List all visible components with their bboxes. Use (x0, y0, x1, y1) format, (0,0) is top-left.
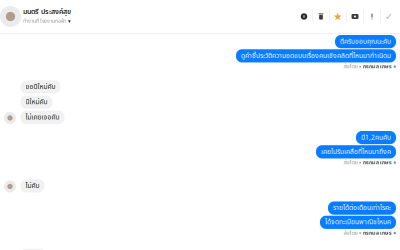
staticText: ได้จดทะเบียนพาณิชไหมค (325, 219, 391, 225)
staticText: มนตรี ประสงค์สุข (23, 9, 71, 15)
staticText: ไม่เคยเจอคับ (25, 114, 59, 120)
button[interactable]: Delete (312, 6, 329, 26)
button[interactable]: ดีครับขอบคุณนะคับ (335, 35, 396, 48)
staticText: กรกมล เกษร (363, 230, 392, 236)
button[interactable]: รายได้ต่อเดือนเท่าไรคะ (328, 201, 396, 215)
button[interactable]: ขอปีใหม่คับ (20, 80, 60, 93)
staticText: กรกมล เกษร (363, 64, 392, 69)
button[interactable]: มนตรี ประสงค์สุข (21, 9, 71, 24)
staticText: ขอปีใหม่คับ (25, 84, 55, 90)
staticText: กรกมล เกษร (363, 160, 392, 165)
staticText: มี1,2คนคับ (361, 134, 391, 141)
button[interactable]: ไม่คับ (20, 179, 44, 192)
button[interactable]: Mail (346, 6, 363, 26)
staticText: ไม่คับ (25, 183, 39, 189)
button[interactable]: Mark done (380, 6, 397, 26)
button[interactable]: ดูคำชี้ประวัติความอดแบบเรื่องคนเชิงคลิดท… (236, 49, 396, 62)
button[interactable]: Star (329, 6, 346, 26)
staticText: ★ (333, 10, 343, 22)
button[interactable]: เคยไปรับเคลือที่ไหนมาถึงค (316, 145, 396, 158)
staticText: ดีครับขอบคุณนะคับ (340, 38, 391, 45)
button[interactable]: ยังคับ (20, 249, 46, 250)
staticText: ดูคำชี้ประวัติความอดแบบเรื่องคนเชิงคลิดท… (241, 53, 391, 59)
button[interactable]: มี1,2คนคับ (356, 131, 396, 144)
staticText: ส่งโดย (343, 64, 357, 69)
staticText: ▾ (68, 18, 71, 24)
button[interactable]: Info (295, 6, 312, 26)
staticText: รายได้ต่อเดือนเท่าไรคะ (333, 205, 391, 211)
staticText: ปีใหม่คับ (25, 99, 47, 105)
button[interactable]: Report spam (363, 6, 380, 26)
button[interactable]: ไม่เคยเจอคับ (20, 111, 64, 124)
staticText: ส่งโดย (343, 160, 357, 165)
button[interactable]: ปีใหม่คับ (20, 95, 52, 109)
button[interactable]: Contact photo (0, 6, 21, 27)
button[interactable]: ได้จดทะเบียนพาณิชไหมค (320, 216, 396, 229)
staticText: ✓ (385, 11, 393, 22)
staticText: ทำงานที่ โรงงานทอผ้า (23, 19, 66, 24)
staticText: ส่งโดย (343, 230, 357, 236)
staticText: เคยไปรับเคลือที่ไหนมาถึงค (321, 149, 391, 155)
